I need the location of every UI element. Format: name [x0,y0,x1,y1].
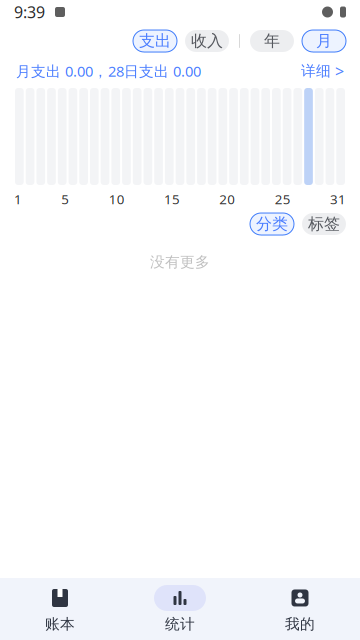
button[interactable]: 统计 [120,578,240,640]
staticText: > [335,60,344,82]
staticText: 15 [164,190,180,208]
button[interactable]: 年 [250,30,294,52]
staticText: 9:39 [14,1,45,23]
button[interactable]: 分类 [250,213,294,235]
staticText: 收入 [191,31,223,51]
staticText: 支出 [139,31,171,51]
staticText: 没有更多 [150,253,210,271]
staticText: 我的 [285,615,315,633]
staticText: 统计 [165,615,195,633]
button[interactable]: 月 [302,30,346,52]
button[interactable]: 我的 [240,578,360,640]
staticText: 31 [330,190,346,208]
staticText: 详细 [301,62,331,80]
staticText: 10 [109,190,125,208]
button[interactable]: 支出 [133,30,177,52]
button[interactable]: 收入 [185,30,229,52]
staticText: 月支出 0.00，28日支出 0.00 [16,61,201,81]
button[interactable]: 详细 [301,60,344,82]
staticText: 20 [219,190,235,208]
staticText: 25 [275,190,291,208]
staticText: 账本 [45,615,75,633]
button[interactable]: 标签 [302,213,346,235]
button[interactable]: 账本 [0,578,120,640]
staticText: 月 [316,31,332,51]
staticText: 5 [61,190,69,208]
staticText: 1 [14,190,22,208]
staticText: 分类 [256,214,288,234]
staticText: 标签 [308,214,340,234]
staticText: 年 [264,31,280,51]
